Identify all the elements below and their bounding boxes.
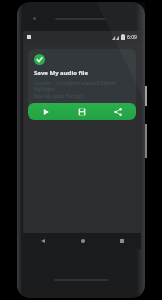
- button[interactable]: Back: [23, 233, 63, 249]
- button[interactable]: Share: [100, 103, 136, 120]
- staticText: Save My audio file.mp3: [34, 93, 83, 99]
- button[interactable]: Save: [64, 103, 100, 120]
- button[interactable]: Play: [28, 103, 64, 120]
- staticText: Save My audio file: [34, 69, 88, 77]
- button[interactable]: Recent apps: [102, 233, 141, 249]
- staticText: 6:09: [127, 34, 137, 41]
- staticText: Location : /storage/emulated/0/Edited/My…: [34, 80, 130, 92]
- button[interactable]: Home: [63, 233, 102, 249]
